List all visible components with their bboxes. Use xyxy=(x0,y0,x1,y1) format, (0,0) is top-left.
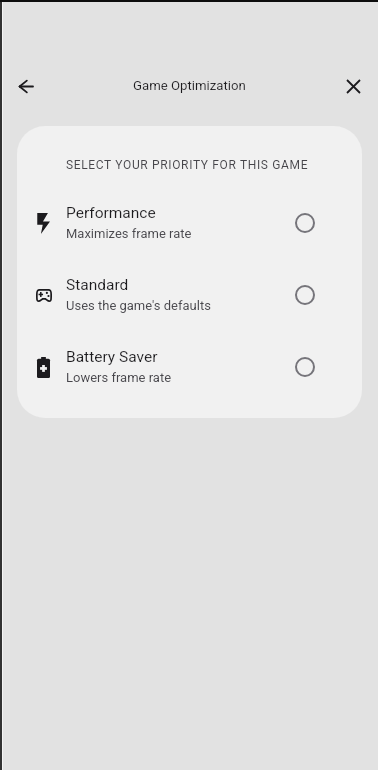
staticText: Standard xyxy=(66,276,129,294)
button[interactable]: Performance xyxy=(17,187,362,259)
button[interactable]: Back xyxy=(5,65,47,107)
button[interactable]: Standard xyxy=(17,259,362,331)
button[interactable]: Close xyxy=(332,65,374,107)
staticText: Lowers frame rate xyxy=(66,370,172,385)
staticText: Maximizes frame rate xyxy=(66,226,192,241)
staticText: Performance xyxy=(66,204,156,222)
staticText: Uses the game's defaults xyxy=(66,298,211,313)
staticText: SELECT YOUR PRIORITY FOR THIS GAME xyxy=(66,158,309,172)
button[interactable]: Battery Saver xyxy=(17,331,362,403)
staticText: Game Optimization xyxy=(133,78,246,93)
staticText: Battery Saver xyxy=(66,348,158,366)
